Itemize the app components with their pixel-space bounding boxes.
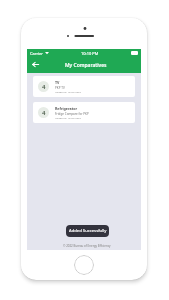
staticText: Added on: 15/07/2022 [55,116,81,119]
staticText: PKP TV [55,86,65,90]
button[interactable]: Home [74,255,94,275]
staticText: Refrigerator [55,106,78,111]
button[interactable]: Added Successfully [66,225,109,237]
staticText: 10:10 PM [81,51,99,56]
staticText: My Comparatives [65,62,107,69]
button[interactable]: Back [28,57,42,71]
staticText: Carrier [30,51,44,56]
staticText: Fridge Compare for PKP [55,112,89,116]
staticText: 4 [42,109,46,117]
staticText: Added on: 15/07/2022 [55,90,81,93]
staticText: Added Successfully [69,228,107,234]
button[interactable]: 4 [33,76,135,97]
button[interactable]: 4 [33,102,135,123]
staticText: TV [55,80,60,85]
staticText: 4 [42,83,46,91]
staticText: © 2022 Bureau of Energy Efficiency [63,244,111,248]
